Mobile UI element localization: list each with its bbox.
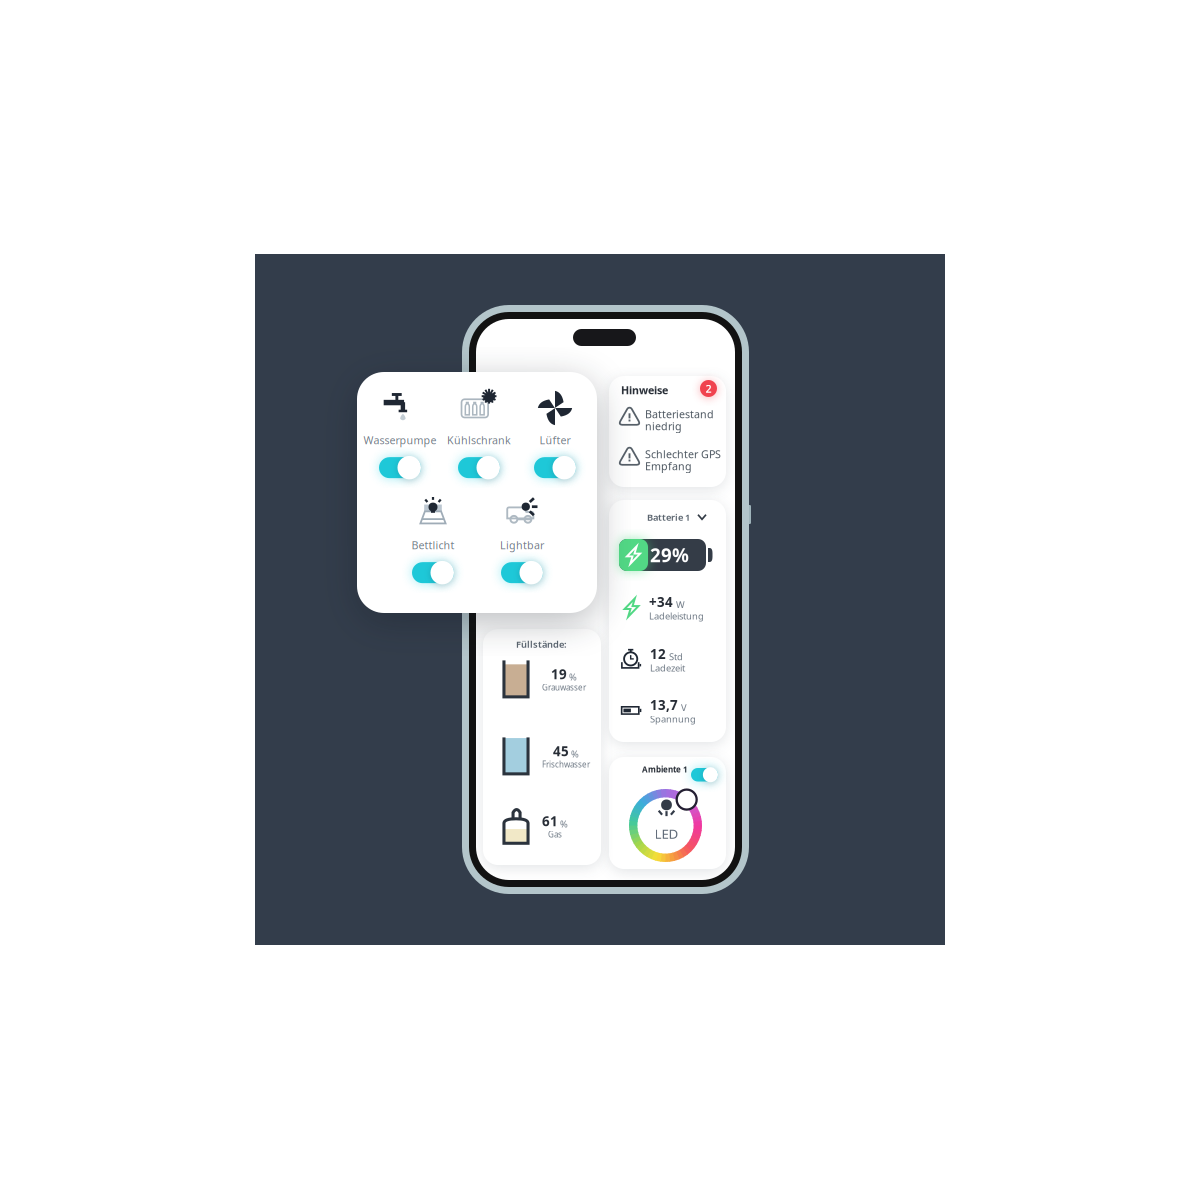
staticText: Grauwasser [542,682,586,693]
staticText: V [681,701,687,714]
staticText: Batterie 1 [647,511,690,523]
staticText: % [571,748,579,760]
staticText: 61 [542,812,558,830]
staticText: Spannung [650,713,696,725]
staticText: LED [654,825,678,842]
staticText: Lightbar [500,538,544,552]
staticText: Empfang [645,459,692,473]
staticText: Ladeleistung [649,610,704,622]
button[interactable]: Lightbar [482,494,562,583]
button[interactable]: Lüfter [515,389,595,478]
staticText: Hinweise [621,383,668,397]
staticText: % [569,671,577,683]
staticText: 13,7 [650,696,678,714]
staticText: Gas [548,829,562,840]
staticText: Ambiente 1 [642,764,688,775]
staticText: 45 [553,742,569,760]
staticText: Lüfter [539,433,570,447]
button[interactable]: Wasserpumpe [360,389,440,478]
staticText: Batteriestand [645,407,714,421]
staticText: Std [669,650,683,663]
staticText: % [560,818,568,830]
staticText: +34 [649,593,673,611]
staticText: Ladezeit [650,662,685,674]
staticText: 29% [650,543,689,567]
staticText: Wasserpumpe [363,433,436,447]
staticText: 2 [705,381,711,396]
staticText: 19 [551,665,567,683]
button[interactable]: Bettlicht [393,494,473,583]
staticText: Frischwasser [542,759,590,770]
staticText: Schlechter GPS [645,447,721,461]
staticText: 12 [650,645,666,663]
staticText: Bettlicht [411,538,454,552]
staticText: Kühlschrank [447,433,511,447]
button[interactable]: Kühlschrank [439,389,519,478]
staticText: W [676,598,685,611]
staticText: niedrig [645,419,682,433]
staticText: Füllstände: [516,638,567,650]
